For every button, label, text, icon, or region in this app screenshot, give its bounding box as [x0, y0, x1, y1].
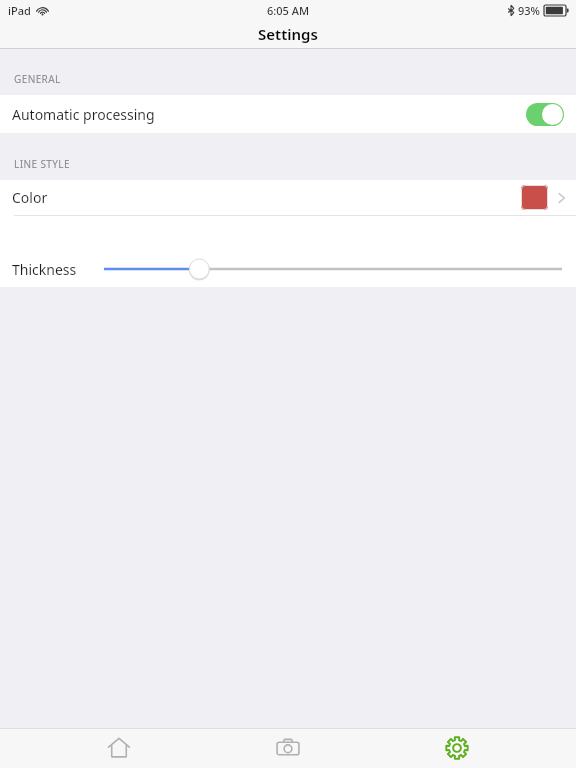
staticText: GENERAL [14, 72, 61, 86]
button[interactable]: Camera [238, 728, 338, 768]
button[interactable]: Thickness slider [104, 254, 562, 284]
button[interactable]: Automatic processing toggle [526, 103, 564, 126]
button[interactable]: Color [0, 180, 576, 215]
staticText: iPad [8, 3, 31, 18]
button[interactable]: Settings [407, 728, 507, 768]
staticText: Settings [258, 24, 318, 44]
button[interactable]: Home [69, 728, 169, 768]
staticText: 6:05 AM [267, 3, 310, 18]
staticText: Thickness [12, 260, 77, 279]
button[interactable]: Automatic processing [0, 95, 576, 133]
staticText: Automatic processing [12, 105, 155, 124]
staticText: LINE STYLE [14, 157, 70, 171]
staticText: 93% [518, 3, 540, 18]
staticText: Color [12, 188, 48, 207]
